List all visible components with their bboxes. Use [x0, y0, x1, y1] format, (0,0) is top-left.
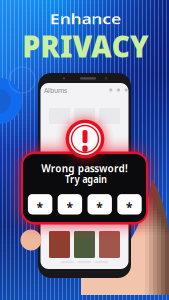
- staticText: Wrong password!: [38, 161, 131, 175]
- staticText: PRIVACY: [20, 26, 150, 65]
- staticText: *: [37, 199, 44, 215]
- staticText: Try again: [61, 172, 110, 186]
- staticText: *: [66, 199, 73, 215]
- staticText: Enhance: [53, 8, 118, 29]
- staticText: *: [96, 199, 103, 215]
- staticText: *: [126, 199, 133, 215]
- staticText: Albums: [44, 86, 67, 95]
